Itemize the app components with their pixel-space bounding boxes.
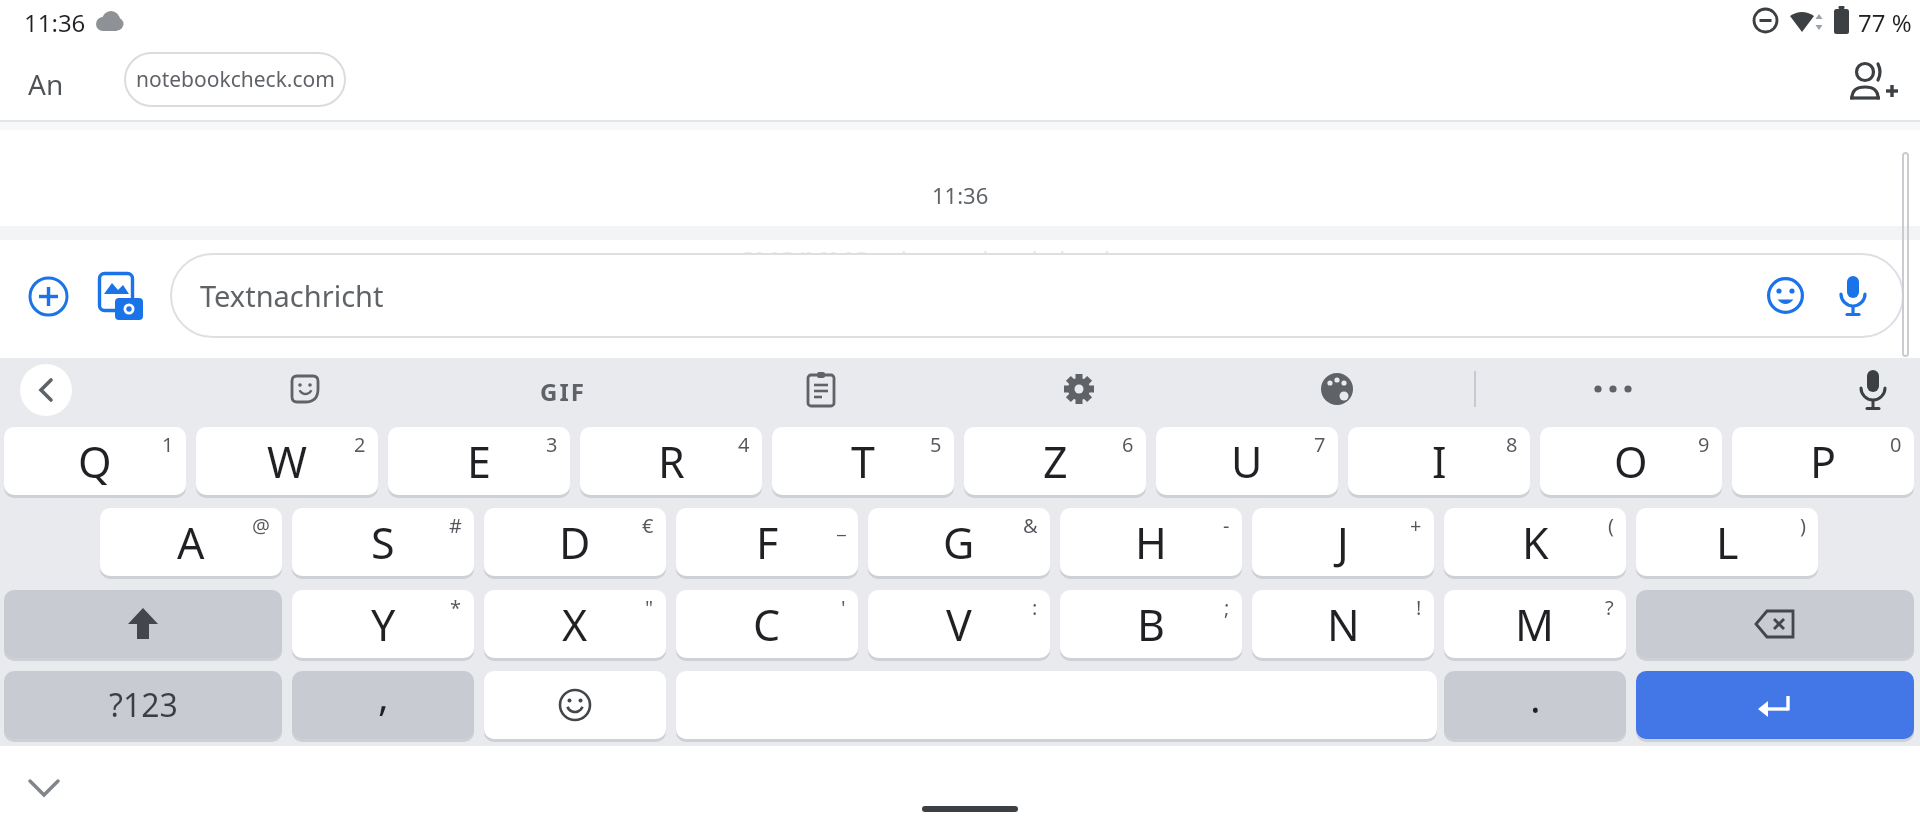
- button[interactable]: [289, 373, 321, 405]
- button[interactable]: M: [1444, 590, 1626, 658]
- staticText: ?123: [109, 683, 178, 727]
- staticText: V: [946, 595, 972, 654]
- button[interactable]: [28, 276, 69, 317]
- staticText: U: [1231, 432, 1263, 491]
- button[interactable]: [1848, 60, 1900, 106]
- button[interactable]: O: [1540, 427, 1722, 495]
- button[interactable]: [98, 272, 144, 322]
- staticText: E: [467, 432, 491, 491]
- staticText: M: [1515, 595, 1555, 654]
- button[interactable]: I: [1348, 427, 1530, 495]
- staticText: S: [371, 513, 395, 572]
- button[interactable]: [806, 371, 836, 407]
- button[interactable]: J: [1252, 508, 1434, 576]
- staticText: SMS/MMS mit notebookcheck.com: [740, 243, 1180, 280]
- staticText: +: [1410, 512, 1422, 539]
- staticText: 6: [1122, 431, 1134, 458]
- staticText: An: [28, 65, 64, 103]
- staticText: P: [1810, 432, 1837, 491]
- staticText: Q: [78, 432, 112, 491]
- staticText: €: [642, 512, 654, 539]
- button[interactable]: [4, 590, 282, 658]
- staticText: 0: [1890, 431, 1902, 458]
- staticText: A: [177, 513, 205, 572]
- button[interactable]: Y: [292, 590, 474, 658]
- button[interactable]: R: [580, 427, 762, 495]
- staticText: notebookcheck.com: [136, 65, 335, 94]
- staticText: R: [658, 432, 685, 491]
- button[interactable]: [484, 671, 666, 739]
- staticText: I: [1432, 432, 1447, 491]
- staticText: C: [753, 595, 781, 654]
- staticText: 2: [354, 431, 366, 458]
- staticText: N: [1327, 595, 1360, 654]
- staticText: 11:36: [932, 180, 989, 210]
- button[interactable]: F: [676, 508, 858, 576]
- button[interactable]: D: [484, 508, 666, 576]
- button[interactable]: Q: [4, 427, 186, 495]
- button[interactable]: C: [676, 590, 858, 658]
- button[interactable]: S: [292, 508, 474, 576]
- button[interactable]: [1320, 372, 1354, 406]
- button[interactable]: Textnachricht: [170, 253, 1904, 338]
- staticText: G: [943, 513, 975, 572]
- staticText: _: [837, 512, 846, 539]
- button[interactable]: U: [1156, 427, 1338, 495]
- staticText: -: [1223, 512, 1230, 539]
- staticText: 5: [930, 431, 942, 458]
- staticText: (: [1608, 512, 1614, 539]
- staticText: *: [450, 594, 462, 621]
- staticText: 77 %: [1858, 6, 1912, 39]
- button[interactable]: N: [1252, 590, 1434, 658]
- button[interactable]: X: [484, 590, 666, 658]
- staticText: ": [645, 594, 654, 621]
- staticText: 9: [1698, 431, 1710, 458]
- button[interactable]: [1594, 385, 1638, 393]
- button[interactable]: [1858, 368, 1888, 412]
- button[interactable]: V: [868, 590, 1050, 658]
- button[interactable]: T: [772, 427, 954, 495]
- staticText: O: [1614, 432, 1648, 491]
- staticText: W: [267, 432, 307, 491]
- staticText: :: [1032, 594, 1038, 621]
- button[interactable]: W: [196, 427, 378, 495]
- button[interactable]: [1062, 372, 1096, 406]
- button[interactable]: L: [1636, 508, 1818, 576]
- staticText: !: [1416, 594, 1422, 621]
- button[interactable]: [1636, 671, 1914, 739]
- button[interactable]: A: [100, 508, 282, 576]
- button[interactable]: K: [1444, 508, 1626, 576]
- button[interactable]: E: [388, 427, 570, 495]
- button[interactable]: [20, 364, 72, 416]
- button[interactable]: [1636, 590, 1914, 658]
- button[interactable]: notebookcheck.com: [124, 52, 346, 107]
- staticText: 4: [738, 431, 750, 458]
- staticText: T: [851, 432, 875, 491]
- button[interactable]: B: [1060, 590, 1242, 658]
- staticText: ,: [378, 668, 389, 722]
- staticText: D: [559, 513, 591, 572]
- button[interactable]: Z: [964, 427, 1146, 495]
- button[interactable]: H: [1060, 508, 1242, 576]
- staticText: Z: [1043, 432, 1068, 491]
- staticText: #: [449, 512, 462, 539]
- staticText: 11:36: [24, 6, 86, 39]
- button[interactable]: P: [1732, 427, 1914, 495]
- staticText: X: [562, 595, 588, 654]
- staticText: .: [1530, 670, 1541, 724]
- staticText: 8: [1506, 431, 1518, 458]
- button[interactable]: GIF: [540, 375, 586, 408]
- button[interactable]: ,: [292, 671, 474, 739]
- button[interactable]: [28, 776, 60, 800]
- button[interactable]: ?123: [4, 671, 282, 739]
- staticText: F: [756, 513, 779, 572]
- button[interactable]: G: [868, 508, 1050, 576]
- button[interactable]: .: [1444, 671, 1626, 739]
- staticText: Textnachricht: [200, 276, 384, 315]
- staticText: ): [1800, 512, 1806, 539]
- staticText: L: [1716, 513, 1739, 572]
- staticText: 7: [1314, 431, 1326, 458]
- staticText: ': [841, 594, 846, 621]
- staticText: ;: [1224, 594, 1230, 621]
